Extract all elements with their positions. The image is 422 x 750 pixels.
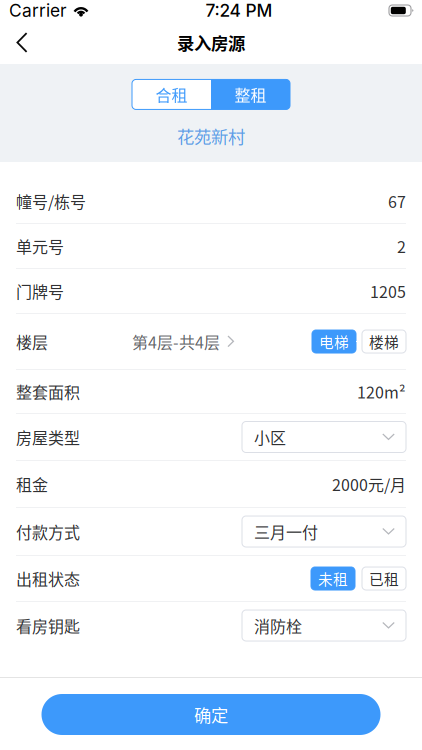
staticText: 房屋类型 bbox=[16, 425, 80, 449]
staticText: 幢号/栋号 bbox=[16, 189, 86, 213]
staticText: Carrier bbox=[9, 0, 67, 21]
staticText: 消防栓 bbox=[254, 614, 302, 637]
staticText: 确定 bbox=[194, 702, 228, 727]
staticText: 楼梯 bbox=[369, 331, 399, 352]
button[interactable]: 未租 bbox=[311, 567, 355, 590]
button[interactable]: 第4层-共4层 bbox=[132, 324, 235, 359]
staticText: 2000元/月 bbox=[332, 472, 406, 496]
staticText: 录入房源 bbox=[177, 30, 245, 55]
staticText: 电梯 bbox=[319, 331, 349, 352]
staticText: 小区 bbox=[254, 425, 286, 449]
staticText: 花苑新村 bbox=[177, 123, 245, 149]
button[interactable]: 电梯 bbox=[312, 330, 356, 353]
staticText: 楼层 bbox=[16, 330, 48, 353]
staticText: 整套面积 bbox=[16, 380, 80, 403]
button[interactable]: 花苑新村 bbox=[157, 109, 265, 155]
staticText: 付款方式 bbox=[16, 520, 80, 543]
staticText: 单元号 bbox=[16, 234, 64, 258]
staticText: 未租 bbox=[318, 568, 348, 589]
button[interactable]: 合租 bbox=[132, 79, 211, 109]
staticText: 整租 bbox=[234, 83, 266, 106]
button[interactable]: 三月一付 bbox=[242, 516, 406, 547]
button[interactable]: 确定 bbox=[41, 694, 380, 735]
staticText: 120m² bbox=[357, 380, 406, 403]
button[interactable]: 已租 bbox=[362, 567, 406, 590]
staticText: 7:24 PM bbox=[205, 0, 272, 21]
button[interactable]: 楼梯 bbox=[362, 330, 406, 353]
staticText: 合租 bbox=[155, 83, 187, 106]
staticText: 租金 bbox=[16, 472, 48, 496]
staticText: 67 bbox=[388, 189, 406, 213]
staticText: 出租状态 bbox=[16, 567, 80, 590]
staticText: 三月一付 bbox=[254, 520, 318, 543]
button[interactable]: 消防栓 bbox=[242, 610, 406, 641]
staticText: 1205 bbox=[370, 279, 406, 303]
staticText: 已租 bbox=[369, 568, 399, 589]
button[interactable]: Back bbox=[0, 21, 44, 64]
staticText: 门牌号 bbox=[16, 279, 64, 303]
staticText: 第4层-共4层 bbox=[132, 330, 220, 353]
staticText: 看房钥匙 bbox=[16, 614, 80, 637]
staticText: 2 bbox=[397, 234, 406, 258]
button[interactable]: 小区 bbox=[242, 421, 406, 452]
button[interactable]: 整租 bbox=[211, 79, 290, 109]
